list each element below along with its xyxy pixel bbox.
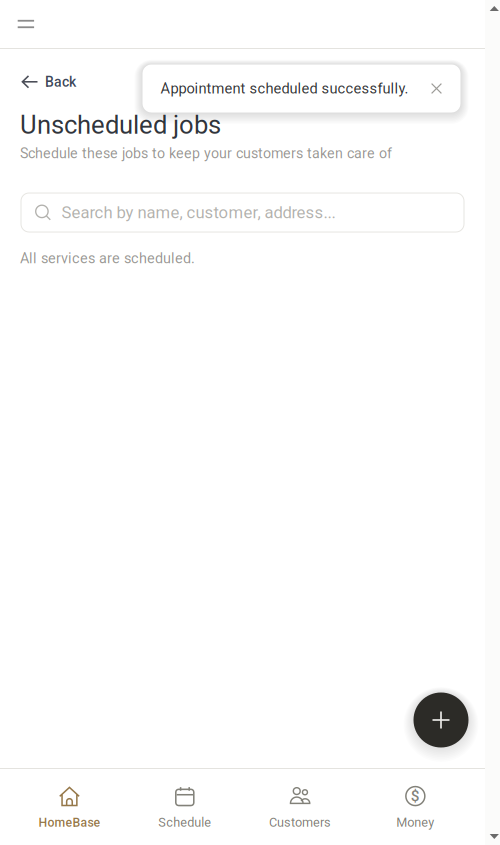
button[interactable]: Customers [242, 784, 358, 834]
button[interactable]: Dismiss [426, 78, 446, 98]
button[interactable]: Schedule [127, 784, 242, 834]
staticText: Schedule these jobs to keep your custome… [20, 145, 392, 162]
staticText: Schedule [158, 815, 211, 830]
button[interactable]: HomeBase [12, 784, 127, 834]
staticText: HomeBase [38, 815, 100, 830]
button[interactable]: Add job [401, 680, 480, 759]
button[interactable]: Menu [9, 7, 43, 41]
staticText: All services are scheduled. [20, 250, 195, 267]
staticText: $ [411, 787, 420, 805]
staticText: Money [396, 815, 434, 830]
staticText: Back [45, 74, 76, 90]
button[interactable]: $ [358, 784, 473, 834]
staticText: Customers [269, 815, 331, 830]
button[interactable]: Back [21, 71, 79, 93]
staticText: Search by name, customer, address... [61, 203, 335, 222]
staticText: Unscheduled jobs [20, 110, 221, 140]
staticText: Appointment scheduled successfully. [160, 80, 408, 97]
